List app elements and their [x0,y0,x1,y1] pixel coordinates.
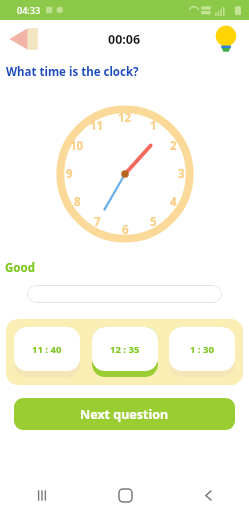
button[interactable]: Home [105,478,145,512]
staticText: 11 : 40 [32,343,62,356]
staticText: 00:06 [108,31,141,48]
staticText: 2 [170,138,177,154]
button[interactable] [27,285,222,303]
staticText: Next question [80,406,169,423]
staticText: 6 [122,222,129,238]
staticText: 8 [74,194,81,210]
staticText: Good [5,260,35,276]
staticText: 4 [170,194,177,210]
staticText: 7 [94,214,101,230]
button[interactable]: Next question [14,398,235,430]
staticText: 11 [90,118,104,134]
button[interactable]: 1 : 30 [169,327,235,377]
staticText: 12 : 35 [110,343,140,356]
staticText: 3 [178,166,185,182]
staticText: 1 : 30 [190,343,214,356]
staticText: What time is the clock? [6,64,139,80]
button[interactable]: Hint [213,24,239,54]
staticText: 04:33 [17,4,41,16]
button[interactable]: Back [8,24,42,54]
staticText: 10 [70,138,84,154]
button[interactable]: Recents [22,478,62,512]
button[interactable]: 11 : 40 [14,327,80,377]
button[interactable]: 12 : 35 [92,327,158,377]
staticText: 9 [66,166,73,182]
staticText: 5 [150,214,157,230]
staticText: 12 [118,110,132,126]
staticText: 1 [150,118,157,134]
button[interactable]: Back [188,478,228,512]
